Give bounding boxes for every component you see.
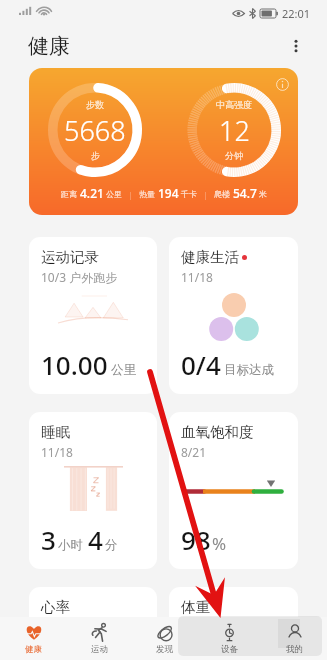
staticText: 4 bbox=[88, 522, 103, 557]
staticText: 54.7 bbox=[233, 185, 257, 201]
staticText: 步数 bbox=[86, 99, 104, 110]
staticText: 设备 bbox=[221, 644, 238, 655]
staticText: 目标达成 bbox=[224, 362, 274, 378]
staticText: 血氧饱和度 bbox=[181, 423, 254, 441]
staticText: 98 bbox=[181, 522, 211, 557]
button[interactable]: 体重 bbox=[169, 587, 298, 647]
button[interactable]: 心率 bbox=[29, 587, 157, 647]
button[interactable]: Info bbox=[271, 73, 293, 95]
staticText: 距离 bbox=[61, 189, 77, 199]
staticText: 22:01 bbox=[282, 6, 311, 21]
button[interactable]: 运动记录 bbox=[29, 237, 157, 394]
button[interactable]: 健康生活 bbox=[169, 237, 298, 394]
staticText: 千卡 bbox=[181, 189, 197, 199]
staticText: 8/21 bbox=[181, 444, 207, 460]
staticText: 11/18 bbox=[181, 269, 213, 285]
staticText: 公里 bbox=[106, 189, 122, 199]
staticText: 小时 bbox=[58, 537, 83, 553]
button[interactable]: 血氧饱和度 bbox=[169, 412, 298, 569]
staticText: 0/4 bbox=[181, 347, 221, 382]
staticText: 5668 bbox=[64, 112, 126, 149]
button[interactable]: Info bbox=[29, 68, 298, 215]
staticText: 11/18 bbox=[41, 444, 73, 460]
button[interactable]: 睡眠 bbox=[29, 412, 157, 569]
staticText: 健康 bbox=[25, 644, 42, 655]
staticText: 10/3 户外跑步 bbox=[41, 269, 118, 285]
staticText: 心率 bbox=[41, 598, 70, 616]
staticText: 热量 bbox=[139, 189, 155, 199]
staticText: 发现 bbox=[156, 644, 173, 655]
staticText: 运动 bbox=[91, 644, 108, 655]
staticText: 步 bbox=[91, 150, 100, 161]
staticText: 公里 bbox=[111, 362, 136, 378]
staticText: 194 bbox=[158, 185, 179, 201]
staticText: 我的 bbox=[286, 644, 303, 655]
staticText: 爬楼 bbox=[214, 189, 230, 199]
staticText: 12 bbox=[219, 112, 250, 149]
button[interactable]: 发现 bbox=[132, 617, 197, 660]
staticText: % bbox=[212, 532, 227, 555]
staticText: 分钟 bbox=[225, 150, 243, 161]
staticText: 健康 bbox=[28, 33, 70, 59]
staticText: 体重 bbox=[181, 598, 210, 616]
staticText: 3 bbox=[41, 522, 56, 557]
staticText: 睡眠 bbox=[41, 423, 70, 441]
staticText: 4.21 bbox=[80, 185, 104, 201]
staticText: 分 bbox=[105, 537, 118, 553]
staticText: 中高强度 bbox=[216, 99, 252, 110]
button[interactable]: 我的 bbox=[262, 617, 327, 660]
button[interactable]: 运动 bbox=[66, 617, 132, 660]
button[interactable]: 健康 bbox=[0, 617, 66, 660]
button[interactable]: 设备 bbox=[197, 617, 262, 660]
staticText: 10.00 bbox=[41, 347, 108, 382]
staticText: 运动记录 bbox=[41, 248, 99, 266]
staticText: 米 bbox=[259, 189, 267, 199]
staticText: 健康生活 bbox=[181, 248, 239, 266]
button[interactable]: More options bbox=[281, 31, 311, 61]
